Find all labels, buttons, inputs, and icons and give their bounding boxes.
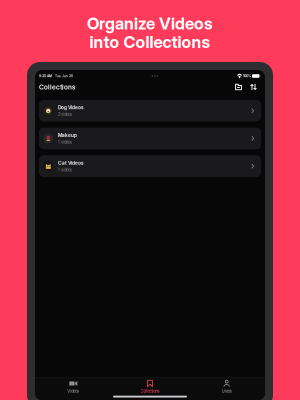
button[interactable]: Cat Videos	[39, 155, 261, 177]
button[interactable]: Collections	[112, 379, 188, 395]
button[interactable]: New Collection	[231, 81, 246, 93]
staticText: 1 videos	[58, 139, 72, 145]
staticText: Collections	[39, 83, 75, 91]
button[interactable]: Dog Videos	[39, 100, 261, 121]
staticText: 2 videos	[58, 112, 72, 117]
staticText: 1 videos	[58, 167, 72, 172]
staticText: 100%	[242, 74, 252, 78]
button[interactable]: Videos	[35, 379, 112, 395]
button[interactable]: Users	[188, 379, 265, 395]
staticText: Dog Videos	[58, 104, 84, 110]
staticText: into Collections	[89, 32, 210, 52]
button[interactable]: Makeup	[39, 128, 261, 149]
staticText: Collections	[140, 389, 159, 394]
staticText: 9:30 AM	[39, 74, 52, 78]
staticText: Makeup	[58, 132, 77, 138]
button[interactable]: Sort	[246, 81, 261, 93]
staticText: Videos	[67, 389, 79, 394]
staticText: Cat Videos	[58, 160, 84, 166]
staticText: Organize Videos	[87, 13, 213, 33]
staticText: Users	[222, 389, 232, 394]
staticText: Tue Jan 30	[52, 74, 73, 78]
